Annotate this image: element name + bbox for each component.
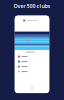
staticText: Over 500 clubs [13,2,50,10]
